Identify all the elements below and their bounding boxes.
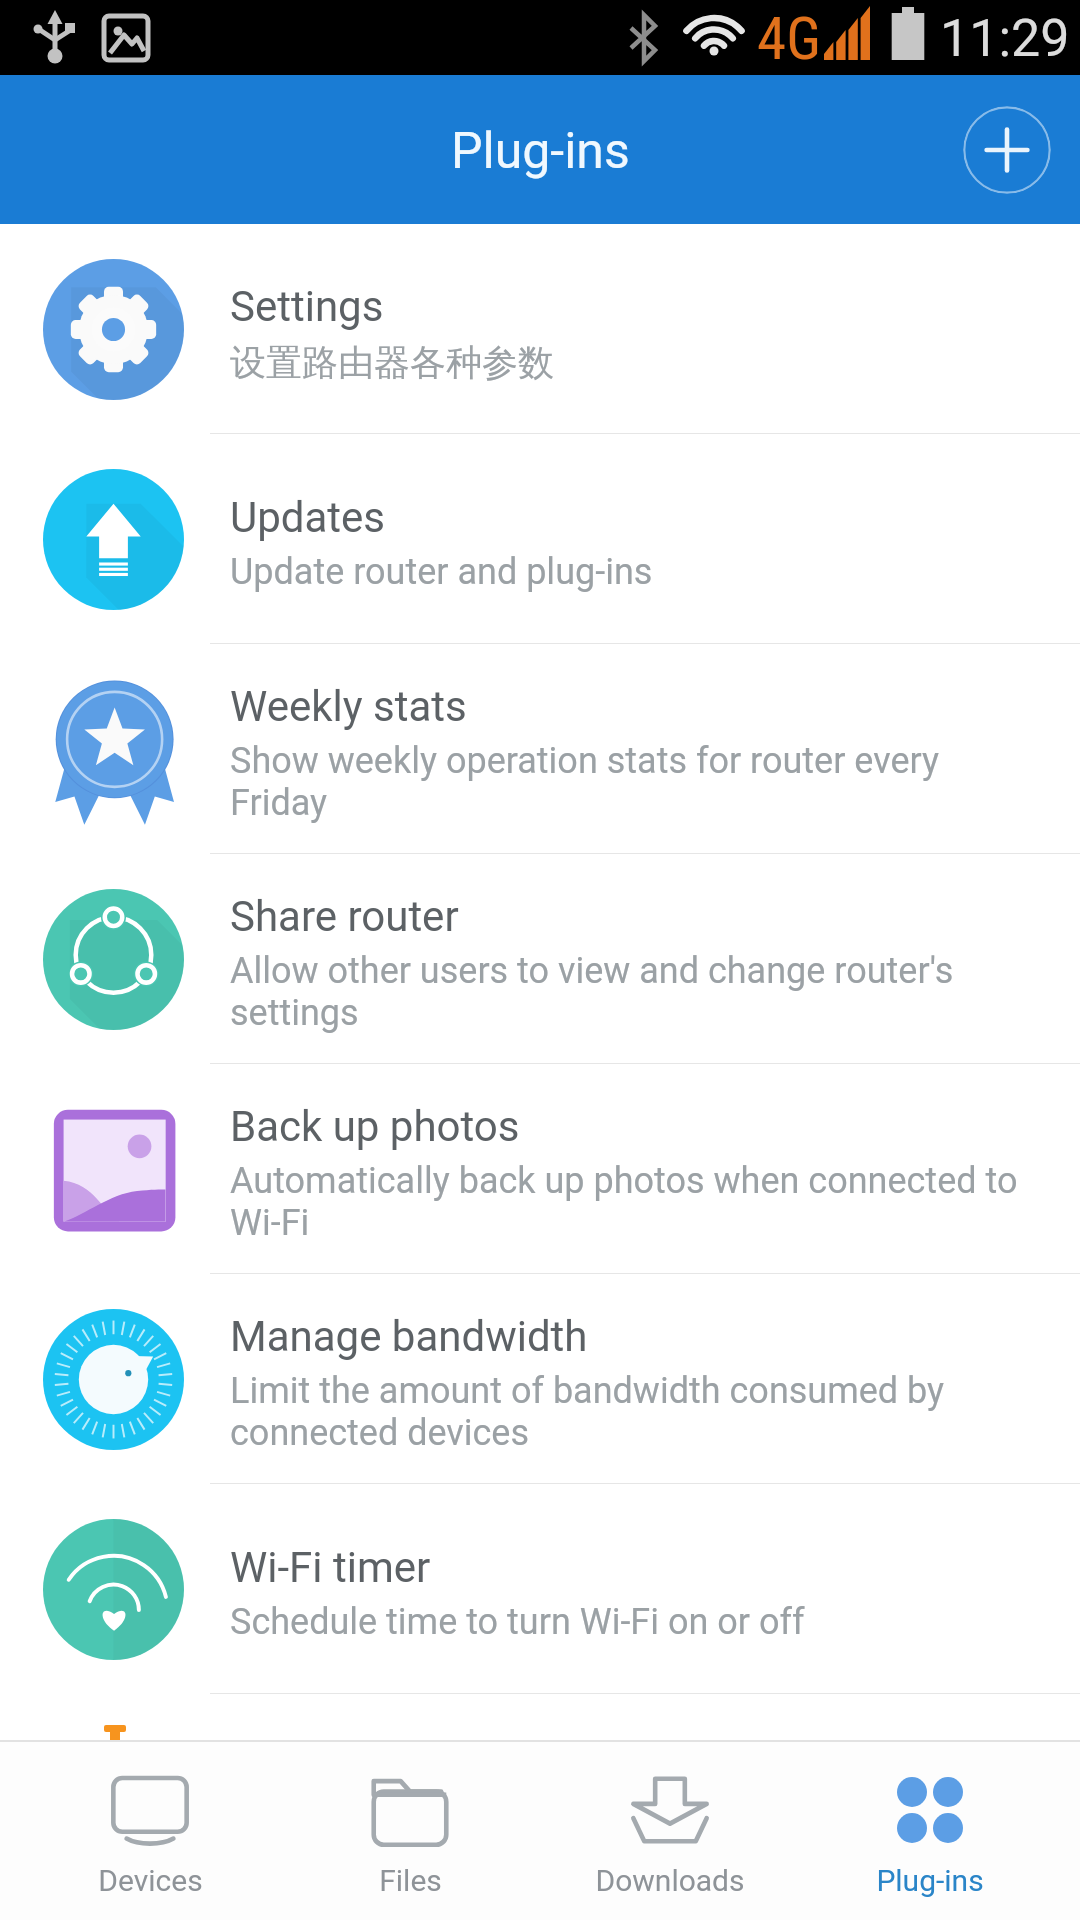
- staticText: Update router and plug-ins: [230, 551, 653, 593]
- staticText: 4G: [757, 4, 821, 73]
- staticText: Plug-ins: [451, 122, 630, 181]
- staticText: Allow other users to view and change rou…: [230, 950, 1042, 1034]
- button[interactable]: Settings: [0, 224, 1080, 434]
- button[interactable]: Manage bandwidth: [0, 1274, 1080, 1484]
- button[interactable]: Back up photos: [0, 1064, 1080, 1274]
- staticText: Share router: [230, 892, 459, 941]
- staticText: Limit the amount of bandwidth consumed b…: [230, 1370, 1042, 1454]
- staticText: Schedule time to turn Wi-Fi on or off: [230, 1601, 805, 1643]
- staticText: Back up photos: [230, 1102, 520, 1151]
- staticText: Files: [379, 1863, 442, 1898]
- staticText: Downloads: [595, 1863, 745, 1898]
- staticText: 设置路由器各种参数: [230, 340, 554, 385]
- button[interactable]: Devices: [20, 1742, 280, 1920]
- staticText: Updates: [230, 493, 386, 542]
- button[interactable]: Plug-ins: [800, 1742, 1060, 1920]
- staticText: Weekly stats: [230, 682, 467, 731]
- staticText: Automatically back up photos when connec…: [230, 1160, 1042, 1244]
- button[interactable]: Add plug-in: [963, 106, 1051, 194]
- button[interactable]: Updates: [0, 434, 1080, 644]
- staticText: Devices: [98, 1863, 203, 1898]
- button[interactable]: [0, 1694, 1080, 1740]
- staticText: Manage bandwidth: [230, 1312, 588, 1361]
- button[interactable]: Downloads: [540, 1742, 800, 1920]
- staticText: Wi-Fi timer: [230, 1543, 431, 1592]
- staticText: 11:29: [940, 8, 1070, 69]
- staticText: Plug-ins: [876, 1863, 984, 1898]
- staticText: Show weekly operation stats for router e…: [230, 740, 1042, 824]
- button[interactable]: Files: [280, 1742, 540, 1920]
- button[interactable]: Weekly stats: [0, 644, 1080, 854]
- button[interactable]: Share router: [0, 854, 1080, 1064]
- staticText: Settings: [230, 282, 384, 331]
- button[interactable]: Wi-Fi timer: [0, 1484, 1080, 1694]
